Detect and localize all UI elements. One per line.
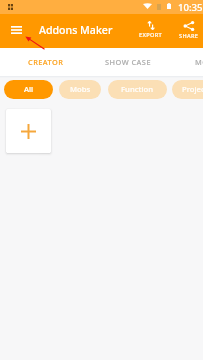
- button[interactable]: Function: [108, 80, 167, 99]
- button[interactable]: SHOW CASE: [87, 48, 169, 76]
- button[interactable]: EXPORT: [137, 21, 165, 39]
- staticText: Project: [182, 84, 203, 94]
- button[interactable]: Open navigation menu: [4, 17, 29, 42]
- staticText: 10:35: [178, 1, 203, 14]
- staticText: MORE: [195, 57, 203, 67]
- staticText: All: [24, 84, 34, 94]
- staticText: SHOW CASE: [105, 57, 151, 67]
- button[interactable]: Mobs: [59, 80, 101, 99]
- button[interactable]: Add new addon: [6, 109, 51, 153]
- staticText: Addons Maker: [39, 23, 113, 37]
- button[interactable]: SHARE: [175, 21, 203, 40]
- staticText: Mobs: [70, 84, 91, 94]
- staticText: Function: [121, 84, 154, 94]
- staticText: EXPORT: [139, 31, 163, 39]
- staticText: SHARE: [179, 32, 199, 40]
- button[interactable]: CREATOR: [5, 48, 87, 76]
- button[interactable]: All: [4, 80, 53, 99]
- button[interactable]: Project: [172, 80, 203, 99]
- staticText: CREATOR: [28, 57, 64, 67]
- button[interactable]: MORE: [166, 48, 203, 76]
